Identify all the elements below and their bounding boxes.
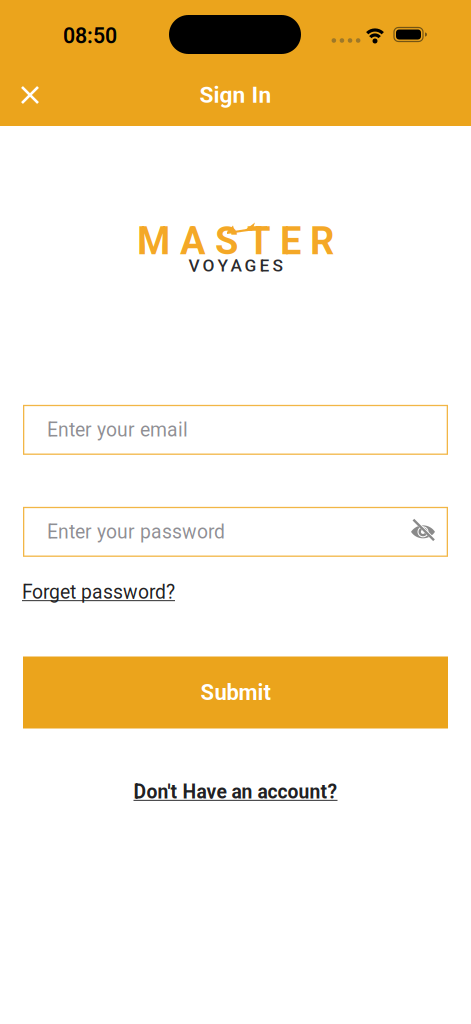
staticText: Submit [200,680,270,705]
staticText: Don't Have an account? [133,780,337,803]
staticText: 08:50 [63,23,117,48]
button[interactable]: Don't Have an account? [133,780,337,803]
button[interactable]: Enter your email [0,405,471,455]
button[interactable]: Close [19,84,41,106]
button[interactable]: Enter your password [0,507,471,557]
staticText: Enter your password [47,520,225,543]
button[interactable]: Forget password? [22,581,175,603]
staticText: Sign In [199,82,271,108]
staticText: VOYAGES [188,255,282,276]
button[interactable]: Show password [410,519,436,545]
staticText: Forget password? [22,581,175,603]
button[interactable]: Submit [23,656,448,728]
staticText: Enter your email [47,418,188,441]
staticText: MASTER [137,219,334,263]
